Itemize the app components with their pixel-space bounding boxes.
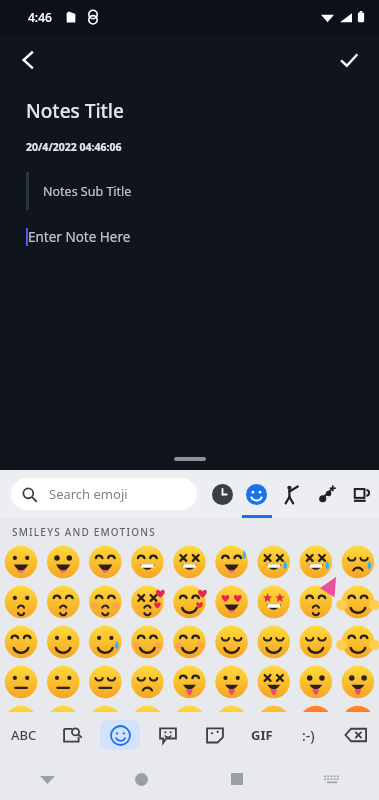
staticText: Search emoji — [49, 485, 128, 503]
staticText: 20/4/2022 04:46:06 — [26, 140, 122, 154]
button[interactable]: Backspace — [332, 712, 379, 758]
button[interactable]: Change keyboard — [284, 758, 379, 800]
button[interactable]: Stickers — [144, 712, 191, 758]
staticText: ABC — [11, 726, 37, 744]
button[interactable]: Food and drink — [344, 470, 379, 518]
button[interactable]: Emoji — [100, 720, 140, 750]
button[interactable]: Emoticons — [285, 712, 332, 758]
button[interactable]: Notes Sub Title — [43, 183, 132, 200]
staticText: :-) — [302, 726, 315, 745]
button[interactable]: Home — [94, 758, 189, 800]
staticText: GIF — [251, 726, 273, 744]
staticText: SMILEYS AND EMOTIONS — [12, 525, 156, 539]
button[interactable]: Sticker pack — [191, 712, 238, 758]
button[interactable]: Animals and nature — [309, 470, 344, 518]
button[interactable]: Enter Note Here — [28, 228, 131, 246]
button[interactable]: People — [274, 470, 309, 518]
button[interactable]: Back — [0, 758, 94, 800]
button[interactable]: Image search — [48, 712, 96, 758]
button[interactable]: Notes Title — [26, 98, 124, 124]
button[interactable]: Letters keyboard — [0, 712, 48, 758]
button[interactable]: Recent apps — [189, 758, 284, 800]
button[interactable]: GIF — [238, 712, 285, 758]
button[interactable]: Back — [6, 38, 50, 82]
button[interactable]: Recent emoji — [205, 470, 239, 518]
button[interactable]: Smileys — [239, 470, 274, 518]
staticText: 4:46 — [28, 9, 52, 25]
button[interactable]: Save note — [327, 38, 371, 82]
button[interactable]: Search emoji — [11, 478, 197, 510]
